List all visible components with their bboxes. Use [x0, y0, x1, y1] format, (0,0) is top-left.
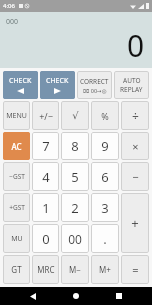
button[interactable]: 1	[32, 193, 59, 222]
button[interactable]: 8	[61, 132, 89, 160]
staticText: 4:06	[3, 2, 15, 10]
button[interactable]: 4	[32, 162, 59, 191]
button[interactable]: −GST	[3, 162, 30, 191]
staticText: M+	[99, 264, 111, 275]
staticText: 0	[42, 230, 50, 248]
button[interactable]: Recent apps	[109, 287, 129, 305]
staticText: 00	[68, 231, 82, 247]
staticText: REPLAY	[120, 85, 143, 94]
staticText: 000	[6, 17, 19, 27]
staticText: 5	[71, 168, 79, 186]
button[interactable]: −	[121, 162, 149, 191]
button[interactable]: 2	[61, 193, 89, 222]
staticText: MENU	[6, 111, 27, 121]
staticText: CHECK	[46, 76, 69, 86]
staticText: 2	[71, 199, 79, 217]
staticText: 6	[101, 168, 109, 186]
button[interactable]: 0	[32, 224, 59, 253]
staticText: AUTO	[123, 76, 141, 85]
button[interactable]: MU	[3, 224, 30, 253]
button[interactable]: +GST	[3, 193, 30, 222]
button[interactable]: √	[61, 101, 89, 130]
staticText: 8	[71, 137, 79, 155]
button[interactable]: +	[121, 193, 149, 253]
button[interactable]: 6	[91, 162, 119, 191]
staticText: M−	[69, 264, 81, 275]
button[interactable]: =	[121, 255, 149, 284]
button[interactable]: Back	[23, 287, 43, 305]
staticText: +/−	[39, 110, 53, 122]
staticText: −GST	[9, 172, 25, 181]
button[interactable]: ×	[121, 132, 149, 160]
staticText: 7	[42, 137, 50, 155]
staticText: ⌧ 00→◎	[83, 87, 107, 94]
staticText: ÷	[132, 108, 139, 124]
staticText: 9	[101, 137, 109, 155]
button[interactable]: 3	[91, 193, 119, 222]
button[interactable]: ÷	[121, 101, 149, 130]
button[interactable]: Home	[66, 287, 86, 305]
staticText: .	[103, 230, 107, 248]
staticText: ×	[132, 139, 139, 154]
button[interactable]: 7	[32, 132, 59, 160]
staticText: +GST	[9, 203, 25, 212]
staticText: 0	[127, 25, 145, 66]
button[interactable]: GT	[3, 255, 30, 284]
staticText: √	[72, 110, 79, 122]
button[interactable]: M+	[91, 255, 119, 284]
button[interactable]: MENU	[3, 101, 30, 130]
staticText: MU	[11, 234, 23, 244]
staticText: =	[132, 262, 139, 277]
button[interactable]: CHECK	[40, 71, 75, 99]
staticText: AC	[11, 141, 22, 152]
button[interactable]: M−	[61, 255, 89, 284]
staticText: CHECK	[9, 76, 32, 86]
staticText: 1	[42, 199, 50, 217]
staticText: 4	[42, 168, 50, 186]
staticText: +	[131, 214, 139, 232]
button[interactable]: %	[91, 101, 119, 130]
staticText: %	[101, 110, 109, 122]
staticText: −	[132, 169, 139, 184]
staticText: MRC	[37, 264, 55, 275]
button[interactable]: CORRECT	[77, 71, 112, 99]
button[interactable]: AC	[3, 132, 30, 160]
button[interactable]: CHECK	[3, 71, 38, 99]
staticText: GT	[11, 264, 22, 275]
button[interactable]: AUTO	[114, 71, 149, 99]
button[interactable]: 5	[61, 162, 89, 191]
button[interactable]: 9	[91, 132, 119, 160]
button[interactable]: MRC	[32, 255, 59, 284]
staticText: CORRECT	[80, 77, 109, 86]
button[interactable]: +/−	[32, 101, 59, 130]
button[interactable]: .	[91, 224, 119, 253]
staticText: 3	[101, 199, 109, 217]
button[interactable]: 00	[61, 224, 89, 253]
